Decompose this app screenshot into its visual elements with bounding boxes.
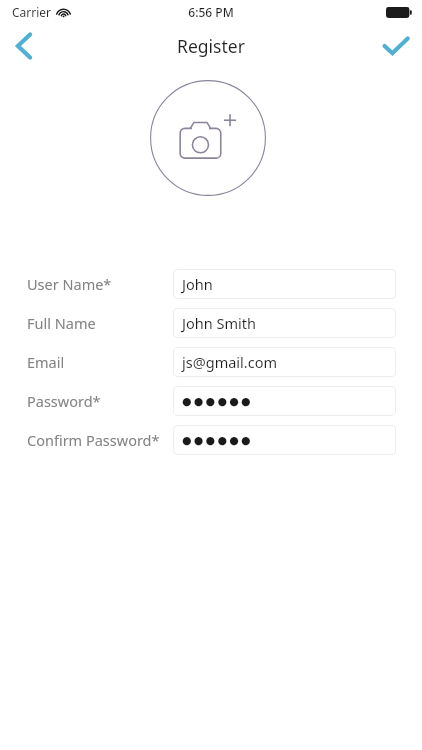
button[interactable]: Password*: [0, 386, 422, 416]
staticText: User Name*: [27, 274, 112, 294]
staticText: Carrier: [12, 4, 52, 20]
staticText: Full Name: [27, 313, 96, 333]
staticText: js@gmail.com: [182, 352, 277, 372]
button[interactable]: Add profile photo: [150, 80, 266, 196]
staticText: Email: [27, 352, 65, 372]
button[interactable]: Full Name: [0, 308, 422, 338]
button[interactable]: Confirm Password*: [0, 425, 422, 455]
button[interactable]: Confirm: [370, 24, 422, 68]
staticText: Confirm Password*: [27, 430, 160, 450]
staticText: John Smith: [182, 313, 256, 333]
button[interactable]: User Name*: [0, 269, 422, 299]
staticText: ●●●●●●: [182, 434, 253, 447]
staticText: Password*: [27, 391, 101, 411]
button[interactable]: Email: [0, 347, 422, 377]
staticText: John: [182, 274, 213, 294]
staticText: 6:56 PM: [188, 4, 234, 20]
staticText: ●●●●●●: [182, 395, 253, 408]
staticText: Register: [177, 34, 245, 58]
button[interactable]: Back: [0, 24, 48, 68]
